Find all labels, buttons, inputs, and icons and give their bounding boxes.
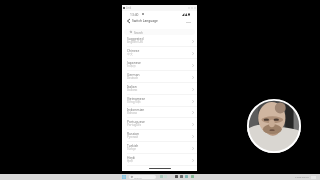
staticText: English (UK): [127, 40, 144, 44]
staticText: Bahasa: [127, 111, 137, 115]
staticText: 13:40: [130, 12, 139, 16]
button[interactable]: Window control: [190, 6, 193, 10]
button[interactable]: Search: [129, 175, 156, 179]
button[interactable]: Turkish: [122, 142, 197, 154]
button[interactable]: Window control: [187, 6, 190, 10]
staticText: Indonesian: [127, 107, 145, 111]
button[interactable]: Indonesian: [122, 106, 197, 118]
button[interactable]: Hindi: [122, 154, 197, 166]
staticText: Tiếng Việt: [127, 100, 141, 104]
button[interactable]: App: [185, 175, 188, 178]
button[interactable]: App: [191, 175, 194, 178]
button[interactable]: Search: [124, 29, 195, 35]
button[interactable]: Japanese: [122, 59, 197, 71]
button[interactable]: Back: [124, 17, 132, 25]
button[interactable]: Chinese: [122, 47, 197, 59]
staticText: German: [127, 72, 140, 76]
button[interactable]: Vietnamese: [122, 95, 197, 107]
staticText: Chinese: [127, 48, 140, 52]
button[interactable]: German: [122, 71, 197, 83]
staticText: Vietnamese: [127, 96, 146, 100]
staticText: Link: [126, 6, 132, 10]
staticText: 日本語: [127, 64, 136, 68]
staticText: Search: [134, 31, 143, 35]
staticText: हिन्दी: [127, 159, 133, 163]
button[interactable]: App: [175, 175, 178, 178]
button[interactable]: More options: [184, 19, 192, 25]
staticText: Japanese: [127, 60, 141, 64]
staticText: Turkish: [127, 143, 139, 147]
staticText: Italian: [127, 84, 137, 88]
staticText: Русский: [127, 135, 139, 139]
button[interactable]: Italian: [122, 83, 197, 95]
button[interactable]: Start: [122, 175, 126, 179]
button[interactable]: Suggested: [122, 35, 197, 47]
staticText: Deutsch: [127, 76, 139, 80]
staticText: 12:05 04/10: [295, 175, 309, 178]
button[interactable]: App: [180, 175, 183, 178]
staticText: Switch Language: [132, 19, 158, 23]
button[interactable]: Window control: [193, 6, 196, 10]
staticText: Russian: [127, 131, 139, 135]
staticText: Search: [134, 176, 142, 179]
button[interactable]: 12:05 04/10: [295, 175, 309, 178]
staticText: Hindi: [127, 155, 136, 159]
button[interactable]: Russian: [122, 130, 197, 142]
staticText: Portuguese: [127, 119, 145, 123]
button[interactable]: Portuguese: [122, 118, 197, 130]
staticText: Suggested: [127, 36, 144, 40]
staticText: Português: [127, 123, 142, 127]
staticText: 中文: [127, 52, 133, 56]
staticText: Türkçe: [127, 147, 137, 151]
staticText: Italiano: [127, 88, 138, 92]
